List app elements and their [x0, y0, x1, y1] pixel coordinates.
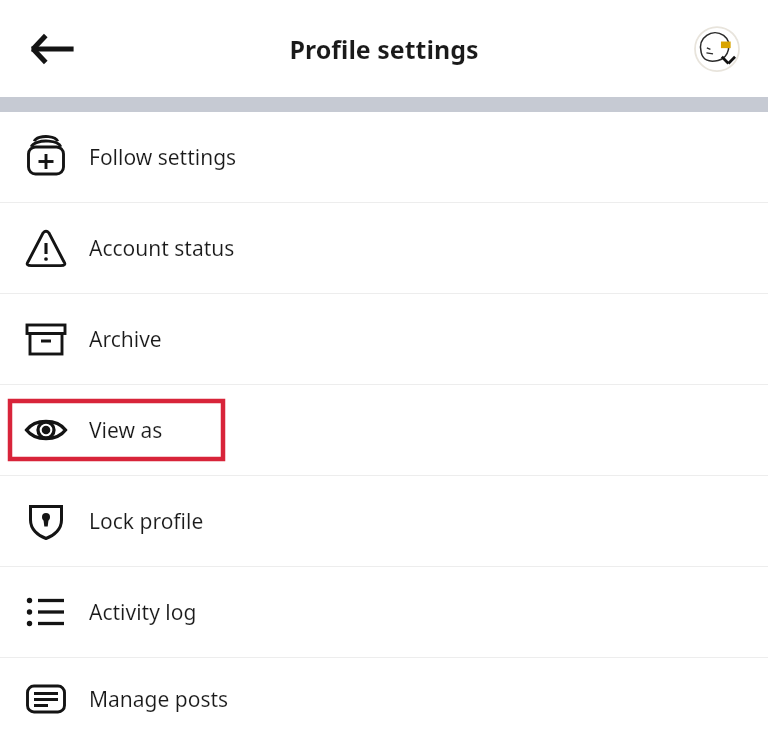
button[interactable]: Activity log	[0, 567, 768, 657]
staticText: Lock profile	[89, 507, 204, 536]
button[interactable]: Account switcher	[688, 20, 746, 78]
button[interactable]: Follow settings	[0, 112, 768, 202]
button[interactable]: View as	[0, 385, 768, 475]
staticText: Account status	[89, 234, 235, 263]
staticText: Profile settings	[289, 32, 479, 66]
staticText: View as	[89, 416, 163, 445]
staticText: Archive	[89, 325, 162, 354]
button[interactable]: Lock profile	[0, 476, 768, 566]
button[interactable]: Back	[14, 11, 90, 87]
staticText: Follow settings	[89, 143, 237, 172]
staticText: Activity log	[89, 598, 197, 627]
button[interactable]: Archive	[0, 294, 768, 384]
staticText: Manage posts	[89, 685, 229, 714]
button[interactable]: Account status	[0, 203, 768, 293]
button[interactable]: Manage posts	[0, 658, 768, 740]
